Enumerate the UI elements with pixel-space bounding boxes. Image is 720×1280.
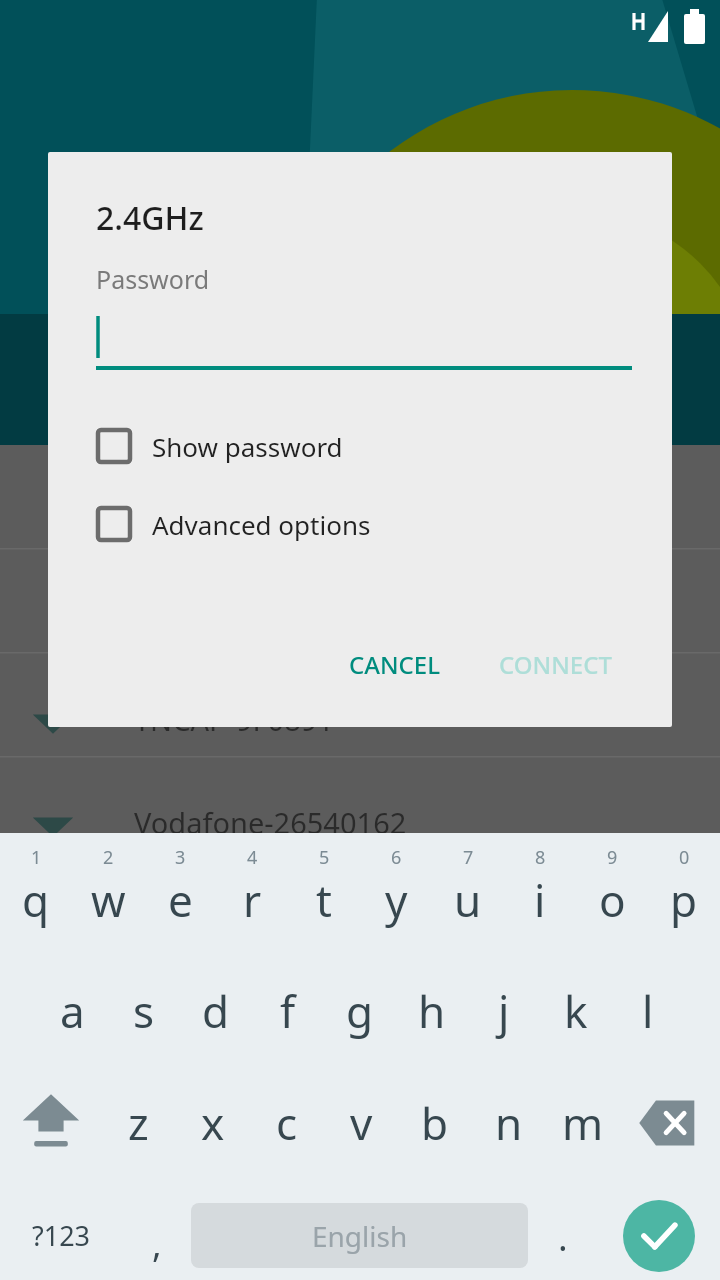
button[interactable]: TNCAP-9F0891 [30, 690, 720, 748]
staticText: 4 [247, 845, 258, 870]
staticText: l [642, 981, 654, 1041]
staticText: u [454, 870, 482, 930]
button[interactable]: b [398, 1067, 472, 1179]
staticText: CANCEL [349, 648, 441, 681]
button[interactable]: j [468, 955, 540, 1067]
button[interactable]: CANCEL [333, 638, 457, 691]
staticText: a [60, 981, 85, 1041]
button[interactable]: , [122, 1179, 191, 1280]
staticText: c [276, 1093, 298, 1153]
staticText: y [385, 870, 408, 930]
staticText: 0 [679, 845, 690, 870]
staticText: English [312, 1217, 408, 1255]
button[interactable]: Advanced options [96, 502, 672, 546]
staticText: t [316, 870, 332, 930]
button[interactable]: . [528, 1179, 597, 1280]
button[interactable]: English [191, 1203, 528, 1268]
staticText: ?123 [32, 1217, 91, 1254]
button[interactable] [96, 314, 632, 370]
staticText: 6 [391, 845, 402, 870]
button[interactable]: 5 [288, 833, 360, 955]
button[interactable]: 9 [576, 833, 648, 955]
staticText: Vodafone-26540162 [134, 803, 407, 842]
button[interactable]: v [324, 1067, 398, 1179]
staticText: 7 [463, 845, 474, 870]
staticText: 2.4GHz [96, 196, 204, 240]
staticText: g [346, 981, 374, 1041]
staticText: d [202, 981, 230, 1041]
button[interactable]: l [612, 955, 684, 1067]
button[interactable]: Shift [0, 1067, 101, 1179]
staticText: Password [96, 262, 210, 296]
staticText: 9 [607, 845, 618, 870]
button[interactable]: g [324, 955, 396, 1067]
staticText: Advanced options [152, 507, 371, 542]
staticText: v [350, 1093, 373, 1153]
staticText: , [152, 1219, 162, 1268]
staticText: n [495, 1093, 523, 1153]
staticText: e [168, 870, 193, 930]
staticText: r [243, 870, 262, 930]
staticText: TNCAP-9F0891 [134, 700, 334, 739]
staticText: 8 [535, 845, 546, 870]
button[interactable]: 2 [72, 833, 144, 955]
button[interactable]: ?123 [0, 1179, 122, 1280]
staticText: z [128, 1093, 149, 1153]
button[interactable]: h [396, 955, 468, 1067]
button[interactable]: 4 [216, 833, 288, 955]
button[interactable]: 6 [360, 833, 432, 955]
button[interactable]: CONNECT [483, 638, 628, 691]
button[interactable]: 3 [144, 833, 216, 955]
staticText: p [670, 870, 698, 930]
staticText: Show password [152, 429, 343, 464]
staticText: k [564, 981, 588, 1041]
staticText: q [22, 870, 50, 930]
staticText: h [418, 981, 446, 1041]
button[interactable]: 0 [648, 833, 720, 955]
button[interactable]: Vodafone-26540162 [30, 793, 720, 851]
staticText: x [201, 1093, 225, 1153]
staticText: f [280, 981, 296, 1041]
staticText: m [562, 1093, 604, 1153]
staticText: s [133, 981, 155, 1041]
button[interactable]: 7 [432, 833, 504, 955]
button[interactable]: d [180, 955, 252, 1067]
button[interactable]: Done [597, 1179, 720, 1280]
button[interactable]: Show password [96, 424, 672, 468]
staticText: j [498, 981, 510, 1041]
button[interactable]: Backspace [620, 1067, 720, 1179]
staticText: w [91, 870, 126, 930]
button[interactable]: k [540, 955, 612, 1067]
staticText: 5 [319, 845, 330, 870]
button[interactable]: f [252, 955, 324, 1067]
button[interactable]: c [250, 1067, 324, 1179]
staticText: 1 [31, 845, 42, 870]
button[interactable]: 1 [0, 833, 72, 955]
button[interactable]: 8 [504, 833, 576, 955]
button[interactable]: x [176, 1067, 250, 1179]
button[interactable]: s [108, 955, 180, 1067]
staticText: 2 [103, 845, 114, 870]
button[interactable]: n [472, 1067, 546, 1179]
staticText: b [421, 1093, 449, 1153]
staticText: 3 [175, 845, 186, 870]
staticText: o [599, 870, 626, 930]
staticText: i [534, 870, 546, 930]
staticText: . [558, 1213, 568, 1262]
button[interactable]: z [101, 1067, 176, 1179]
button[interactable]: m [546, 1067, 620, 1179]
button[interactable]: a [36, 955, 108, 1067]
staticText: CONNECT [499, 648, 612, 681]
